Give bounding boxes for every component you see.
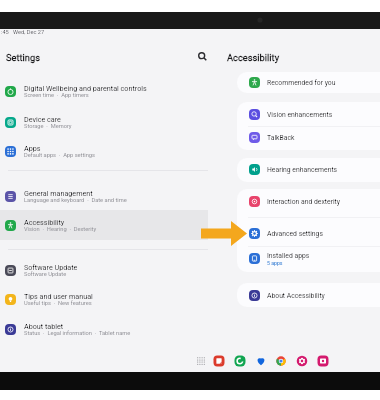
button[interactable]: Tips and user manual — [0, 284, 208, 314]
staticText: Interaction and dexterity — [267, 198, 341, 206]
button[interactable]: Interaction and dexterity — [237, 190, 380, 213]
staticText: TalkBack — [267, 134, 295, 142]
staticText: Advanced settings — [267, 230, 323, 238]
staticText: Software Update — [24, 263, 78, 271]
button[interactable]: app3 — [255, 355, 267, 367]
button[interactable]: chrome — [275, 355, 287, 367]
staticText: Device care — [24, 115, 61, 123]
staticText: :45 Wed, Dec 27 — [1, 29, 45, 36]
button[interactable]: Apps — [0, 136, 208, 166]
button[interactable]: Digital Wellbeing and parental controls — [0, 76, 208, 106]
staticText: Vision enhancements — [267, 111, 333, 119]
button[interactable]: app2 — [234, 355, 246, 367]
button[interactable]: Advanced settings — [237, 222, 380, 245]
button[interactable]: All apps — [195, 355, 207, 367]
staticText: About Accessibility — [267, 292, 325, 300]
staticText: Vision · Hearing · Dexterity — [24, 226, 97, 233]
staticText: Language and keyboard · Date and time — [24, 197, 127, 204]
staticText: Recommended for you — [267, 79, 336, 87]
staticText: Default apps · App settings — [24, 152, 95, 159]
staticText: Status · Legal information · Tablet name — [24, 330, 131, 337]
staticText: About tablet — [24, 322, 64, 330]
button[interactable]: About tablet — [0, 314, 208, 344]
staticText: Hearing enhancements — [267, 166, 338, 174]
staticText: Settings — [6, 52, 40, 63]
button[interactable]: Hearing enhancements — [237, 158, 380, 181]
staticText: Software Update — [24, 271, 67, 278]
button[interactable]: Device care — [0, 107, 208, 137]
staticText: Digital Wellbeing and parental controls — [24, 84, 147, 92]
staticText: Storage · Memory — [24, 123, 72, 130]
button[interactable]: Search — [193, 47, 212, 66]
staticText: Screen time · App timers — [24, 92, 89, 99]
button[interactable]: Software Update — [0, 255, 208, 285]
button[interactable]: General management — [0, 181, 208, 211]
staticText: Useful tips · New features — [24, 300, 92, 307]
staticText: Apps — [24, 144, 41, 152]
staticText: Installed apps — [267, 252, 310, 260]
button[interactable]: TalkBack — [237, 126, 380, 149]
button[interactable]: app6 — [317, 355, 329, 367]
button[interactable]: About Accessibility — [237, 284, 380, 307]
button[interactable]: Recommended for you — [237, 71, 380, 94]
staticText: Tips and user manual — [24, 292, 93, 300]
staticText: Accessibility — [227, 52, 280, 63]
button[interactable]: Installed apps — [237, 247, 380, 270]
button[interactable]: app5 — [296, 355, 308, 367]
staticText: General management — [24, 189, 93, 197]
button[interactable]: Vision enhancements — [237, 103, 380, 126]
button[interactable]: Accessibility — [0, 210, 208, 240]
staticText: Accessibility — [24, 218, 65, 226]
button[interactable]: app1 — [213, 355, 225, 367]
staticText: 5 apps — [267, 260, 283, 266]
